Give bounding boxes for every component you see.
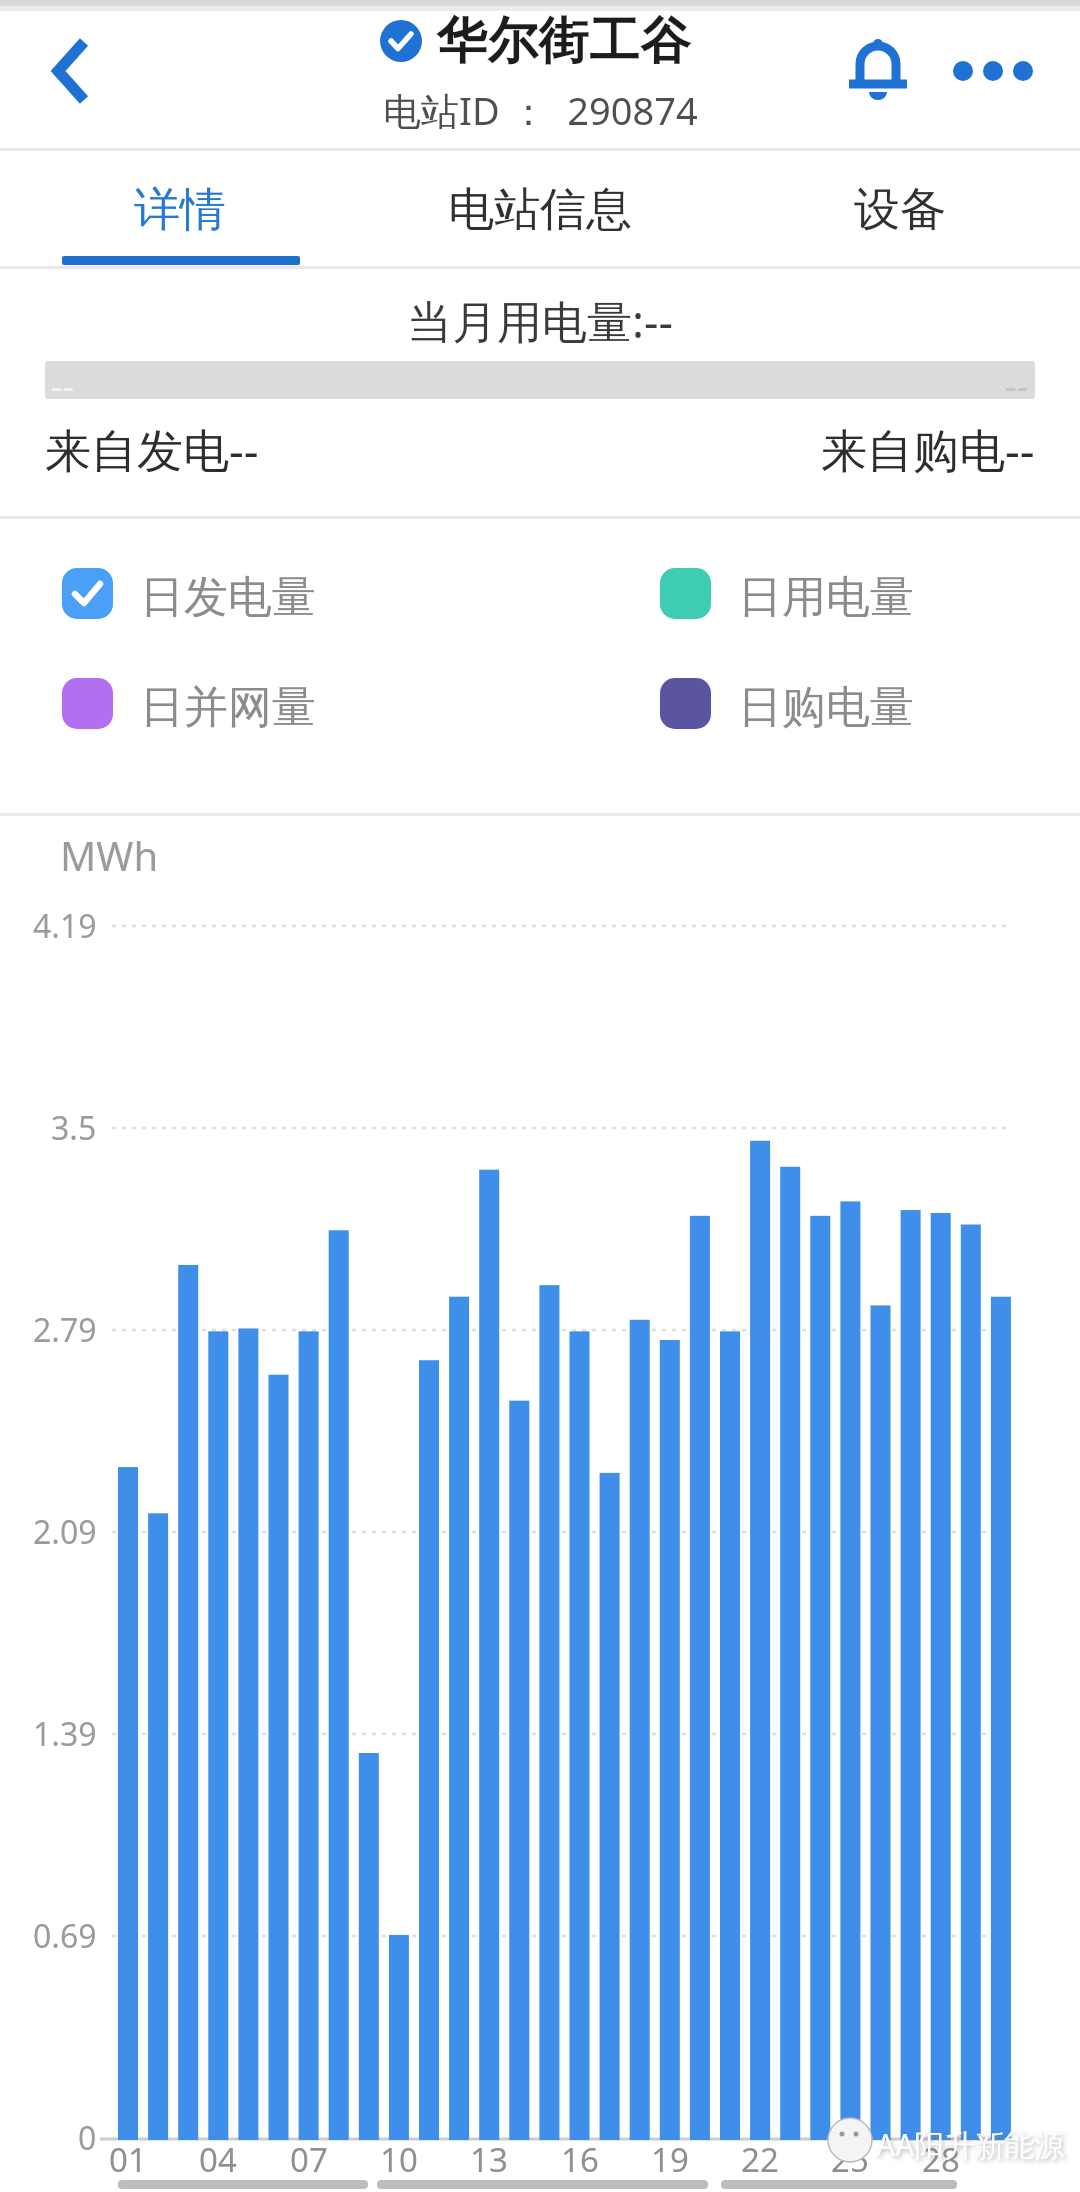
staticText: 电站ID ： 290874 (383, 84, 698, 136)
staticText: 4.19 (33, 904, 97, 948)
staticText: 07 (290, 2137, 328, 2182)
button[interactable] (40, 30, 110, 110)
staticText: 当月用电量:-- (407, 290, 674, 351)
button[interactable]: 日并网量 (62, 678, 238, 730)
button[interactable]: 日购电量 (660, 678, 836, 730)
button[interactable]: 日发电量 (62, 568, 238, 620)
staticText: 04 (199, 2137, 237, 2182)
button[interactable]: 电站信息 (360, 151, 720, 268)
staticText: -- (1005, 361, 1029, 399)
staticText: 日发电量 (140, 570, 316, 622)
staticText: 25 (831, 2137, 869, 2182)
staticText: 详情 (134, 181, 226, 239)
staticText: MWh (60, 828, 159, 882)
button[interactable]: 日用电量 (660, 568, 836, 620)
staticText: 来自购电-- (821, 418, 1035, 481)
button[interactable]: 设备 (720, 151, 1080, 268)
staticText: 2.09 (33, 1510, 97, 1554)
button[interactable]: 详情 (0, 151, 360, 268)
staticText: 日并网量 (140, 680, 316, 732)
staticText: 2.79 (33, 1308, 97, 1352)
staticText: 13 (470, 2137, 508, 2182)
staticText: 0.69 (33, 1914, 97, 1958)
staticText: 10 (380, 2137, 418, 2182)
button[interactable] (944, 52, 1040, 90)
button[interactable] (840, 34, 916, 110)
staticText: 1.39 (33, 1712, 97, 1756)
staticText: 设备 (854, 181, 946, 239)
staticText: 19 (651, 2137, 689, 2182)
staticText: 28 (922, 2137, 960, 2182)
staticText: 01 (109, 2137, 147, 2182)
staticText: 电站信息 (448, 181, 632, 239)
staticText: 来自发电-- (45, 418, 259, 481)
staticText: 16 (561, 2137, 599, 2182)
staticText: 22 (741, 2137, 779, 2182)
staticText: 日购电量 (738, 680, 914, 732)
staticText: 日用电量 (738, 570, 914, 622)
staticText: -- (51, 361, 75, 399)
staticText: 华尔街工谷 (436, 10, 691, 73)
staticText: AA阳升新能源 (876, 2124, 1065, 2165)
staticText: 0 (78, 2116, 97, 2160)
staticText: 3.5 (51, 1106, 97, 1150)
